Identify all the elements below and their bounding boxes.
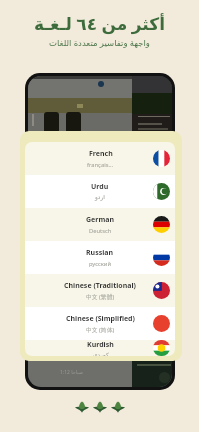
button[interactable]: Chinese (Simplified) [25,307,175,340]
button[interactable]: Urdu [25,175,175,208]
staticText: русский [89,260,112,268]
staticText: français... [87,161,114,169]
staticText: 1:12 صباحا [60,369,84,376]
staticText: Chinese (Simplified) [66,314,135,324]
staticText: 中文 (繁體) [86,293,115,301]
staticText: اردو [95,194,105,201]
staticText: French [89,149,113,159]
staticText: Russian [86,248,114,258]
staticText: کوردی [93,352,109,356]
staticText: Deutsch [89,227,112,235]
button[interactable]: French [25,142,175,175]
staticText: 中文 (简体) [86,326,115,334]
button[interactable]: Chinese (Traditional) [25,274,175,307]
button[interactable]: Russian [25,241,175,274]
staticText: Kurdish [87,340,114,350]
button[interactable]: German [25,208,175,241]
staticText: Chinese (Traditional) [64,281,136,291]
staticText: German [86,215,114,225]
staticText: واجهة وتفاسير متعددة اللغات [49,37,150,49]
staticText: أكثر من ٦٤ لـغـة [34,12,165,35]
staticText: Urdu [91,182,109,192]
button[interactable]: Kurdish [25,340,175,356]
